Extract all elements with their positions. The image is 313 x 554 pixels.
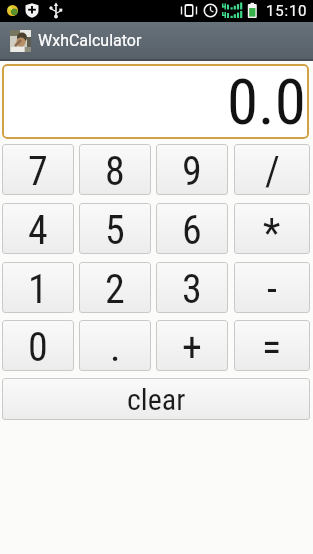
button[interactable]: = <box>234 320 310 371</box>
staticText: 8 <box>105 148 125 195</box>
button[interactable]: clear <box>2 378 310 420</box>
staticText: 5 <box>105 207 125 254</box>
button[interactable]: 9 <box>156 144 228 195</box>
staticText: . <box>110 324 121 371</box>
staticText: * <box>263 210 281 254</box>
staticText: - <box>267 266 277 313</box>
button[interactable]: 8 <box>79 144 151 195</box>
staticText: 3 <box>182 266 202 313</box>
button[interactable]: - <box>234 262 310 313</box>
button[interactable]: 0.0 <box>2 64 309 139</box>
button[interactable]: / <box>234 144 310 195</box>
button[interactable]: 4 <box>2 203 74 254</box>
staticText: = <box>262 324 282 371</box>
staticText: 1 <box>28 266 48 313</box>
staticText: 0.0 <box>227 66 306 139</box>
button[interactable]: 1 <box>2 262 74 313</box>
button[interactable]: 6 <box>156 203 228 254</box>
staticText: WxhCalculator <box>38 31 142 50</box>
staticText: + <box>182 324 202 371</box>
staticText: clear <box>127 382 186 417</box>
staticText: 4 <box>28 207 48 254</box>
button[interactable]: + <box>156 320 228 371</box>
staticText: 9 <box>182 148 202 195</box>
button[interactable]: 2 <box>79 262 151 313</box>
staticText: / <box>265 148 280 195</box>
staticText: 2 <box>105 266 125 313</box>
button[interactable]: 3 <box>156 262 228 313</box>
button[interactable]: 7 <box>2 144 74 195</box>
button[interactable]: * <box>234 203 310 254</box>
button[interactable]: 5 <box>79 203 151 254</box>
staticText: 15:10 <box>266 2 308 20</box>
button[interactable]: . <box>79 320 151 371</box>
staticText: 0 <box>28 324 48 371</box>
button[interactable]: 0 <box>2 320 74 371</box>
staticText: 6 <box>182 207 202 254</box>
staticText: 7 <box>28 148 48 195</box>
